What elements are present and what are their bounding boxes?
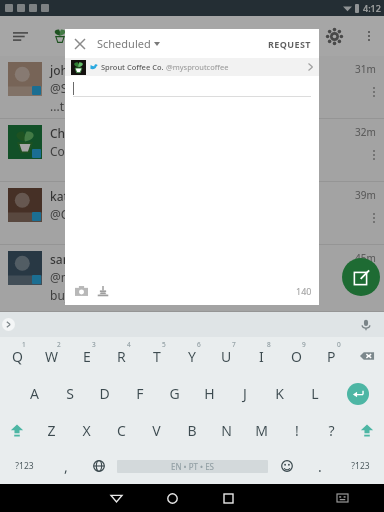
staticText: G (169, 384, 180, 403)
button[interactable]: M (244, 412, 279, 448)
button[interactable]: REQUEST (260, 32, 319, 56)
staticText: ?123 (15, 460, 34, 472)
button[interactable]: ? (314, 412, 349, 448)
staticText: . (318, 457, 322, 476)
button[interactable]: Switch keyboard (317, 484, 367, 512)
button[interactable]: Y (174, 337, 209, 375)
staticText: 4:12 (363, 2, 381, 14)
button[interactable]: A (17, 375, 52, 412)
staticText: 7 (232, 340, 236, 349)
button[interactable]: T (139, 337, 174, 375)
button[interactable]: Home (144, 484, 200, 512)
staticText: ...the Bay Area! (50, 98, 135, 112)
button[interactable]: katies (0, 182, 384, 244)
button[interactable]: U (209, 337, 244, 375)
button[interactable]: ChiSp (0, 119, 384, 181)
staticText: Scheduled (97, 36, 151, 51)
staticText: 31m (355, 62, 376, 76)
staticText: T (153, 347, 161, 366)
button[interactable]: Q (0, 337, 34, 375)
button[interactable]: Tab (96, 482, 192, 512)
button[interactable]: samg (0, 245, 384, 311)
button[interactable]: Sprout Coffee Co. (65, 58, 319, 76)
button[interactable]: Shift (349, 412, 384, 448)
staticText: D (99, 384, 110, 403)
staticText: 8 (267, 340, 271, 349)
button[interactable]: X (69, 412, 104, 448)
button[interactable]: R (104, 337, 139, 375)
button[interactable]: Change language (82, 448, 115, 484)
staticText: 6 (197, 340, 201, 349)
button[interactable]: Voice input (356, 315, 376, 335)
button[interactable]: B (174, 412, 209, 448)
button[interactable]: Expand suggestions (2, 318, 15, 331)
button[interactable]: N (209, 412, 244, 448)
staticText: I (259, 347, 264, 366)
button[interactable]: H (192, 375, 227, 412)
button[interactable]: Back (88, 484, 144, 512)
button[interactable]: P (314, 337, 349, 375)
button[interactable]: Settings (314, 16, 354, 56)
button[interactable]: Search (274, 16, 314, 56)
staticText: REQUEST (268, 38, 311, 50)
staticText: , (64, 457, 68, 476)
button[interactable]: Close (65, 29, 94, 58)
staticText: @ChiS (50, 206, 86, 222)
button[interactable]: D (87, 375, 122, 412)
staticText: P (327, 347, 336, 366)
staticText: samg (50, 251, 82, 267)
staticText: V (152, 421, 161, 440)
button[interactable]: . (303, 448, 336, 484)
button[interactable]: , (49, 448, 82, 484)
button[interactable]: Tab (192, 482, 288, 512)
staticText: 0 (337, 340, 341, 349)
staticText: Z (47, 421, 56, 440)
button[interactable]: Add photo (72, 282, 90, 300)
button[interactable]: F (122, 375, 157, 412)
button[interactable]: W (34, 337, 69, 375)
staticText: C (117, 421, 126, 440)
button[interactable]: Compose (342, 258, 380, 296)
button[interactable]: Recents (200, 484, 256, 512)
button[interactable]: Tab (288, 482, 384, 512)
button[interactable]: More options (354, 21, 384, 51)
button[interactable]: L (297, 375, 332, 412)
staticText: ?123 (351, 460, 370, 472)
staticText: 4 (127, 340, 131, 349)
button[interactable]: Space (117, 460, 268, 473)
staticText: B (187, 421, 197, 440)
button[interactable]: Backspace (349, 337, 384, 375)
button[interactable]: V (139, 412, 174, 448)
button[interactable]: Shift (0, 412, 34, 448)
staticText: EN • PT • ES (171, 461, 214, 472)
staticText: @SFSmith (50, 80, 107, 96)
button[interactable]: O (279, 337, 314, 375)
staticText: ChiSp (50, 125, 83, 141)
button[interactable]: E (69, 337, 104, 375)
button[interactable]: K (262, 375, 297, 412)
button[interactable]: ?123 (336, 448, 384, 484)
button[interactable]: I (244, 337, 279, 375)
button[interactable]: Z (34, 412, 69, 448)
staticText: 140 (296, 285, 312, 297)
button[interactable]: ?123 (0, 448, 49, 484)
staticText: 32m (355, 125, 376, 139)
staticText: 5 (162, 340, 166, 349)
staticText: R (117, 347, 126, 366)
button[interactable]: G (157, 375, 192, 412)
staticText: S (66, 384, 74, 403)
button[interactable]: Add asset (94, 282, 112, 300)
button[interactable]: Emoji (270, 448, 303, 484)
button[interactable]: J (227, 375, 262, 412)
button[interactable]: john_a (0, 56, 384, 118)
button[interactable]: Enter (332, 375, 384, 412)
button[interactable]: C (104, 412, 139, 448)
button[interactable]: Scheduled (94, 32, 163, 55)
button[interactable]: S (52, 375, 87, 412)
staticText: Y (188, 347, 196, 366)
button[interactable]: ! (279, 412, 314, 448)
button[interactable]: Inbox (0, 482, 96, 512)
staticText: H (204, 384, 215, 403)
button[interactable]: Menu (0, 16, 40, 56)
